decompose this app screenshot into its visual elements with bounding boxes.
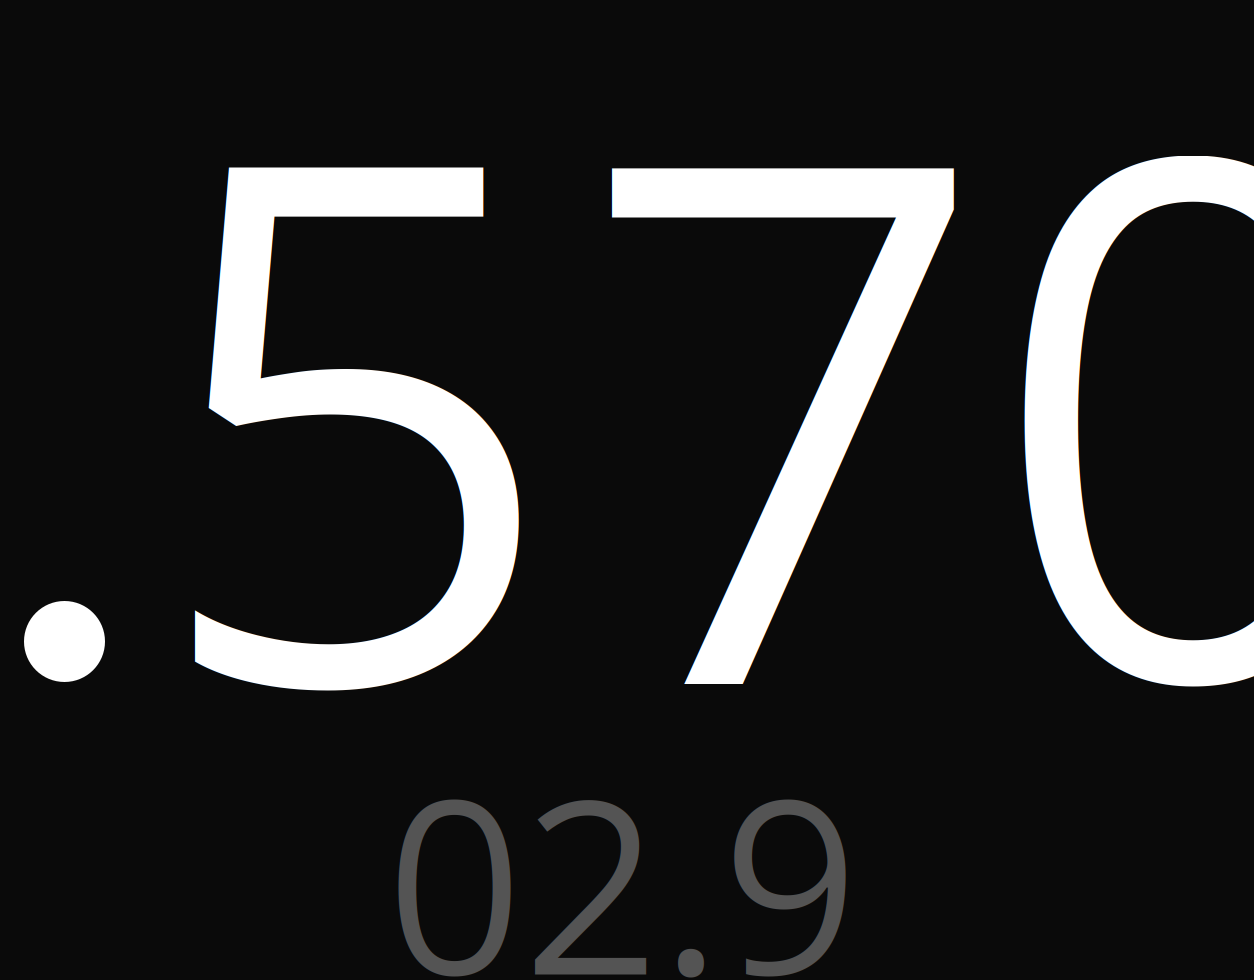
- staticText: 0: [987, 0, 1254, 891]
- staticText: 5: [148, 0, 561, 895]
- staticText: 02.9: [386, 718, 859, 980]
- staticText: 7: [578, 0, 991, 896]
